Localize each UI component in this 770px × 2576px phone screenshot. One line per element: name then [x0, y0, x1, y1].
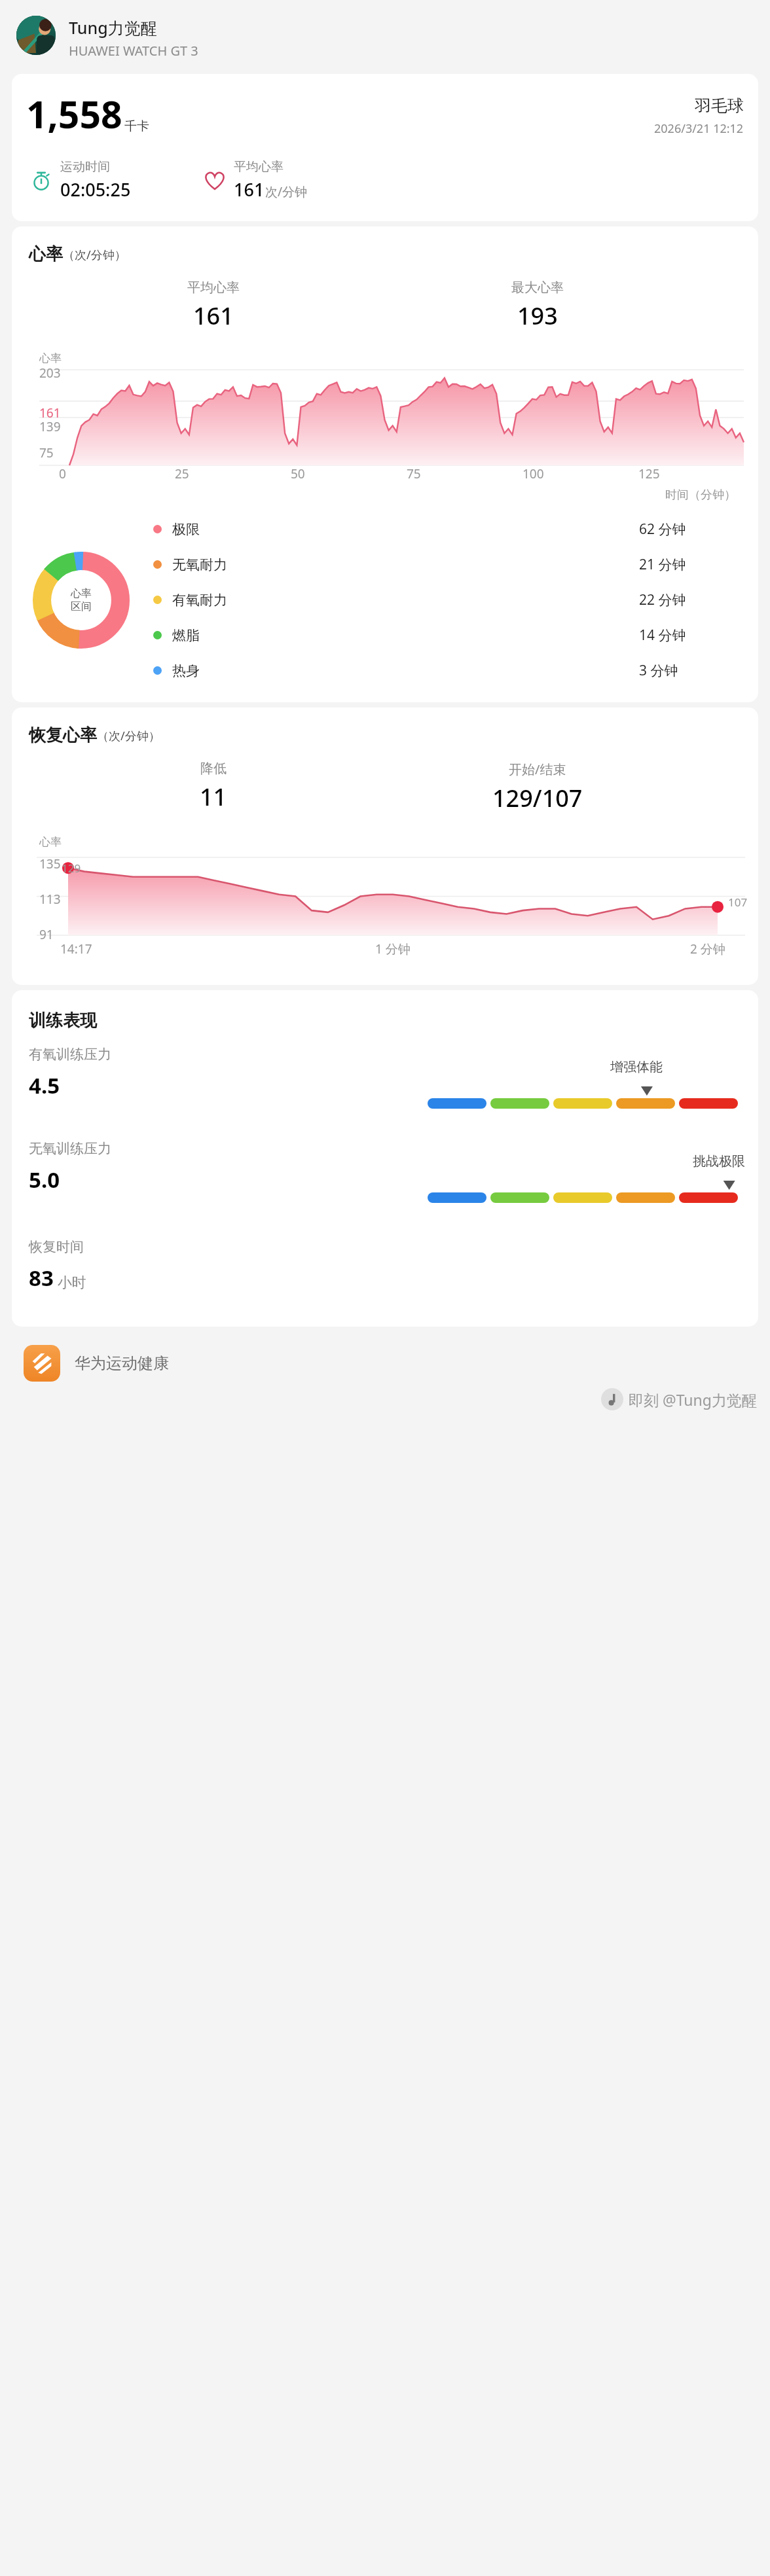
staticText: 161	[39, 404, 61, 421]
staticText: 运动时间	[60, 159, 110, 175]
staticText: 开始/结束	[509, 760, 566, 778]
staticText: 千卡	[124, 118, 149, 134]
other: Average heart rate	[204, 170, 226, 192]
staticText: 小时	[54, 1272, 86, 1291]
staticText: 即刻 @Tung力觉醒	[629, 1389, 757, 1410]
staticText: 129/107	[492, 782, 583, 814]
staticText: 4.5	[29, 1071, 60, 1100]
staticText: 增强体能	[610, 1059, 663, 1075]
staticText: 3 分钟	[639, 661, 678, 680]
staticText: 1,558	[26, 88, 122, 139]
staticText: 有氧耐力	[172, 592, 227, 609]
staticText: 热身	[172, 662, 200, 679]
staticText: 华为运动健康	[75, 1353, 169, 1373]
staticText: 0	[59, 465, 66, 482]
staticText: 有氧训练压力	[29, 1046, 111, 1063]
staticText: 无氧耐力	[172, 556, 227, 573]
staticText: 83	[29, 1263, 54, 1293]
staticText: HUAWEI WATCH GT 3	[69, 42, 198, 60]
staticText: 203	[39, 365, 61, 382]
staticText: 193	[517, 300, 558, 332]
staticText: 恢复时间	[29, 1238, 84, 1255]
staticText: 161	[234, 177, 265, 202]
staticText: 11	[200, 781, 227, 813]
staticText: 心率	[39, 351, 62, 365]
staticText: 1 分钟	[375, 940, 411, 957]
staticText: 100	[522, 465, 544, 482]
staticText: 25	[175, 465, 189, 482]
staticText: 21 分钟	[639, 555, 686, 574]
staticText: 区间	[71, 600, 92, 613]
staticText: 14:17	[60, 940, 92, 957]
button[interactable]: 恢复心率	[12, 707, 758, 985]
staticText: 羽毛球	[695, 96, 744, 116]
staticText: 91	[39, 926, 54, 943]
staticText: 平均心率	[187, 279, 240, 296]
staticText: 161	[193, 300, 234, 332]
staticText: Tung力觉醒	[69, 16, 157, 39]
staticText: 113	[39, 891, 61, 908]
staticText: 2026/3/21 12:12	[654, 120, 744, 137]
staticText: 无氧训练压力	[29, 1140, 111, 1157]
staticText: 降低	[200, 760, 227, 777]
staticText: 62 分钟	[639, 520, 686, 539]
staticText: 最大心率	[511, 279, 564, 296]
staticText: 125	[638, 465, 660, 482]
staticText: 心率	[29, 243, 63, 265]
other: Huawei Health	[24, 1345, 60, 1382]
staticText: 心率	[39, 835, 62, 849]
staticText: 139	[39, 418, 61, 435]
staticText: 挑战极限	[693, 1153, 745, 1170]
staticText: 平均心率	[234, 159, 284, 175]
staticText: （次/分钟）	[63, 247, 126, 263]
staticText: 50	[291, 465, 305, 482]
staticText: 14 分钟	[639, 626, 686, 645]
staticText: 极限	[172, 521, 200, 538]
staticText: 时间（分钟）	[665, 488, 736, 503]
staticText: 129	[62, 861, 81, 876]
staticText: 02:05:25	[60, 177, 131, 202]
staticText: 22 分钟	[639, 590, 686, 609]
staticText: 75	[39, 444, 54, 461]
staticText: 2 分钟	[690, 940, 725, 957]
staticText: 心率	[71, 587, 92, 600]
other: Duration	[31, 170, 52, 191]
staticText: 135	[39, 855, 61, 872]
staticText: 107	[728, 895, 748, 910]
staticText: 75	[407, 465, 421, 482]
button[interactable]: 1,558	[12, 74, 758, 221]
button[interactable]: 心率	[12, 226, 758, 702]
staticText: 训练表现	[29, 1010, 97, 1031]
staticText: 次/分钟	[265, 183, 308, 200]
staticText: 5.0	[29, 1165, 60, 1194]
staticText: 恢复心率	[29, 724, 97, 746]
staticText: 燃脂	[172, 627, 200, 644]
button[interactable]: 训练表现	[12, 990, 758, 1327]
staticText: （次/分钟）	[97, 728, 160, 744]
